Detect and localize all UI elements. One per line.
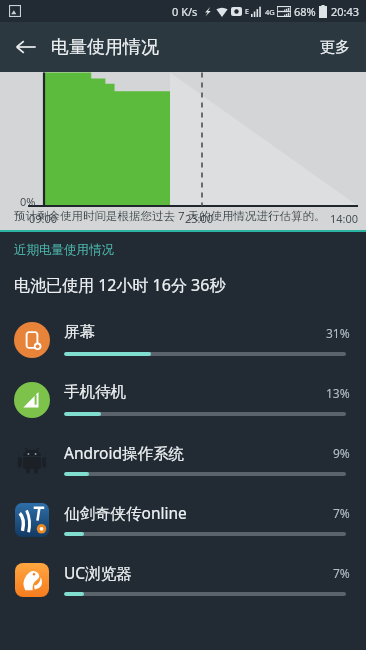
staticText: 手机待机 (64, 382, 126, 402)
staticText: 31% (326, 325, 350, 341)
staticText: E (245, 7, 249, 17)
button[interactable]: 返回 (6, 27, 46, 67)
staticText: Android操作系统 (64, 442, 185, 463)
staticText: 4G (265, 7, 275, 17)
staticText: 0 K/s (172, 4, 198, 19)
staticText: 9% (333, 445, 350, 461)
staticText: 23:00 (185, 211, 214, 226)
staticText: 09:00 (29, 211, 58, 226)
staticText: 仙剑奇侠传online (64, 502, 187, 523)
staticText: 近期电量使用情况 (14, 242, 114, 258)
staticText: 屏幕 (64, 322, 95, 342)
staticText: 更多 (320, 38, 350, 57)
button[interactable]: UC浏览器 (0, 550, 366, 610)
staticText: 7% (333, 505, 350, 521)
staticText: 13% (326, 385, 350, 401)
staticText: 电池已使用 12小时 16分 36秒 (14, 274, 226, 296)
button[interactable]: 更多 (312, 30, 358, 65)
button[interactable]: 手机待机 (0, 370, 366, 430)
staticText: 0% (20, 194, 36, 209)
staticText: 电量使用情况 (51, 36, 159, 59)
staticText: 预计剩余使用时间是根据您过去 7 天的使用情况进行估算的。 (14, 208, 326, 224)
button[interactable]: 仙剑奇侠传online (0, 490, 366, 550)
staticText: 14:00 (330, 211, 359, 226)
staticText: 20:43 (331, 4, 360, 19)
staticText: 68% (294, 4, 316, 19)
staticText: UC浏览器 (64, 562, 132, 583)
button[interactable]: Android操作系统 (0, 430, 366, 490)
staticText: 7% (333, 565, 350, 581)
button[interactable]: 屏幕 (0, 310, 366, 370)
